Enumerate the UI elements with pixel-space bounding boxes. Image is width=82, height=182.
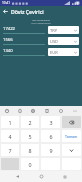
staticText: 17422 [3, 26, 15, 32]
staticText: 3 [49, 119, 53, 126]
button[interactable]: Back [0, 6, 11, 17]
button[interactable]: 7 [1, 144, 19, 156]
staticText: Son Güncelleme [0, 18, 82, 21]
button[interactable]: Recent apps [59, 171, 70, 182]
staticText: 0 [28, 161, 32, 168]
button[interactable]: EUR [48, 48, 79, 56]
button[interactable]: Voice input [54, 106, 68, 115]
button[interactable]: 1 [1, 116, 19, 128]
button[interactable]: Settings [26, 106, 40, 115]
button[interactable]: 0 [21, 158, 39, 170]
button[interactable]: Stickers [13, 106, 26, 115]
button[interactable]: 8 [21, 144, 39, 156]
staticText: 7 [8, 147, 12, 154]
button[interactable]: 5 [21, 130, 39, 142]
staticText: 10:41 [2, 1, 11, 5]
staticText: TRY [50, 28, 57, 33]
button[interactable]: 6 [41, 130, 60, 142]
staticText: 9 [49, 147, 53, 154]
staticText: Tamam [65, 134, 78, 139]
staticText: 8 [28, 147, 32, 154]
button[interactable]: 2 [21, 116, 39, 128]
staticText: 6 [49, 133, 53, 140]
staticText: Döviz Çevirici [11, 8, 44, 15]
staticText: 04.11.2020 09:20 [0, 21, 82, 24]
button[interactable]: TRY [48, 26, 79, 34]
staticText: 1 [8, 119, 12, 126]
staticText: EUR [50, 50, 58, 55]
button[interactable]: Backspace [62, 116, 81, 128]
button[interactable]: Tamam [62, 130, 81, 142]
button[interactable]: Emoji [0, 106, 13, 115]
button[interactable]: USD [48, 37, 79, 45]
button[interactable]: More options [68, 106, 82, 115]
button[interactable]: 9 [41, 144, 60, 156]
staticText: USD [50, 39, 59, 44]
staticText: 1566 [3, 37, 13, 43]
staticText: 5 [28, 133, 32, 140]
button[interactable]: Hide keyboard [62, 144, 81, 156]
button[interactable]: Clipboard [40, 106, 54, 115]
staticText: 2 [28, 119, 32, 126]
staticText: 4 [8, 133, 12, 140]
button[interactable]: Back [12, 171, 23, 182]
staticText: 1340 [3, 48, 13, 54]
button[interactable]: 3 [41, 116, 60, 128]
button[interactable]: 4 [1, 130, 19, 142]
button[interactable]: Home [36, 171, 47, 182]
